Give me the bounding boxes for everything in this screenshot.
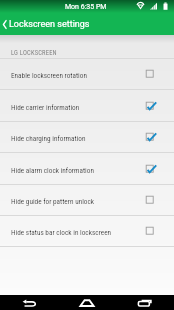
staticText: LG LOCKSCREEN <box>11 49 57 57</box>
staticText: Hide status bar clock in lockscreen <box>11 228 140 236</box>
button[interactable]: Home <box>58 295 116 310</box>
staticText: Enable lockscreen rotation <box>11 71 140 79</box>
button[interactable]: Recent apps <box>116 295 174 310</box>
staticText: Hide guide for pattern unlock <box>11 197 140 205</box>
staticText: Hide charging information <box>11 134 140 142</box>
button[interactable]: Enable lockscreen rotation <box>0 59 174 89</box>
button[interactable]: Hide alarm clock information <box>0 153 174 184</box>
button[interactable]: Back <box>0 295 58 310</box>
staticText: Hide carrier information <box>11 103 140 111</box>
button[interactable]: Hide carrier information <box>0 90 174 121</box>
staticText: Hide alarm clock information <box>11 166 140 174</box>
staticText: Lockscreen settings <box>9 19 90 30</box>
staticText: Mon 6:35 PM <box>65 3 107 11</box>
button[interactable]: Lockscreen settings <box>0 13 96 35</box>
button[interactable]: Hide status bar clock in lockscreen <box>0 216 174 246</box>
button[interactable]: Hide guide for pattern unlock <box>0 185 174 215</box>
button[interactable]: Hide charging information <box>0 122 174 152</box>
